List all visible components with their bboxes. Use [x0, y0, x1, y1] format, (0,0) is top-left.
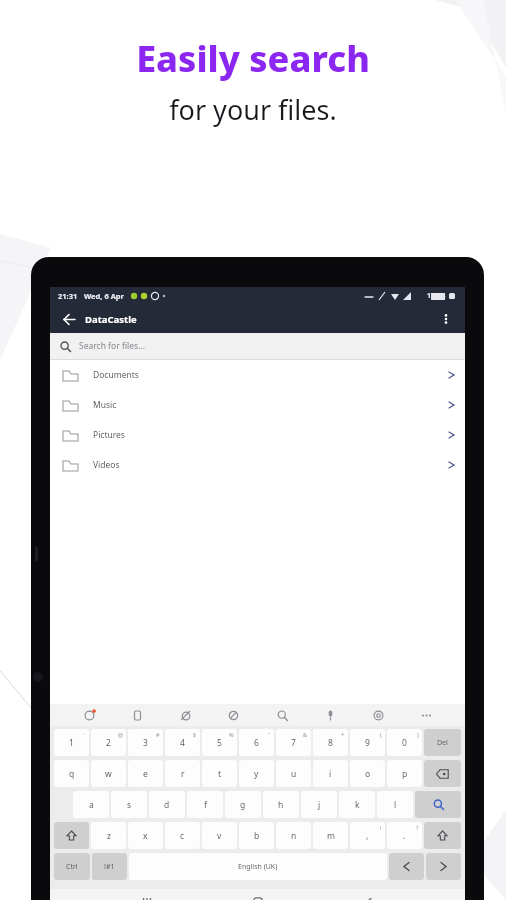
staticText: ,: [366, 830, 369, 842]
button[interactable]: p: [387, 760, 422, 787]
button[interactable]: Keyboard tool 1: [80, 706, 98, 724]
staticText: m: [327, 830, 335, 842]
staticText: !: [380, 824, 382, 831]
button[interactable]: .: [387, 822, 422, 849]
button[interactable]: 8: [313, 729, 348, 756]
button[interactable]: Music: [50, 390, 465, 420]
button[interactable]: a: [73, 791, 109, 818]
button[interactable]: Videos: [50, 450, 465, 480]
staticText: ): [417, 731, 419, 738]
button[interactable]: b: [239, 822, 274, 849]
button[interactable]: c: [165, 822, 200, 849]
button[interactable]: Backspace: [424, 760, 461, 787]
staticText: r: [181, 768, 185, 780]
button[interactable]: q: [54, 760, 89, 787]
button[interactable]: 9: [350, 729, 385, 756]
button[interactable]: 7: [276, 729, 311, 756]
button[interactable]: 1: [54, 729, 89, 756]
button[interactable]: Previous: [389, 853, 424, 880]
button[interactable]: Pictures: [50, 420, 465, 450]
button[interactable]: Keyboard tool 7: [369, 706, 387, 724]
button[interactable]: English (UK): [129, 853, 387, 880]
button[interactable]: l: [377, 791, 413, 818]
button[interactable]: n: [276, 822, 311, 849]
staticText: v: [217, 830, 222, 842]
staticText: Documents: [93, 369, 139, 381]
staticText: 6: [254, 737, 259, 749]
staticText: a: [89, 799, 94, 811]
staticText: ?: [416, 824, 419, 831]
button[interactable]: 0: [387, 729, 422, 756]
button[interactable]: Keyboard tool 8: [417, 706, 435, 724]
staticText: Del: [437, 738, 448, 748]
button[interactable]: Keyboard tool 5: [273, 706, 291, 724]
staticText: g: [240, 799, 246, 811]
staticText: !#1: [104, 862, 115, 872]
button[interactable]: x: [128, 822, 163, 849]
staticText: $: [193, 731, 197, 738]
button[interactable]: j: [301, 791, 337, 818]
button[interactable]: Search for files...: [60, 333, 465, 359]
button[interactable]: Search: [415, 791, 461, 818]
button[interactable]: d: [149, 791, 185, 818]
button[interactable]: 4: [165, 729, 200, 756]
button[interactable]: Keyboard tool 2: [128, 706, 146, 724]
button[interactable]: s: [111, 791, 147, 818]
staticText: h: [278, 799, 284, 811]
button[interactable]: h: [263, 791, 299, 818]
staticText: w: [105, 768, 112, 780]
staticText: e: [143, 768, 148, 780]
button[interactable]: e: [128, 760, 163, 787]
button[interactable]: y: [239, 760, 274, 787]
staticText: Videos: [93, 459, 120, 471]
button[interactable]: z: [91, 822, 126, 849]
button[interactable]: u: [276, 760, 311, 787]
button[interactable]: Keyboard tool 6: [321, 706, 339, 724]
button[interactable]: Ctrl: [54, 853, 90, 880]
button[interactable]: 3: [128, 729, 163, 756]
button[interactable]: Home: [245, 889, 271, 900]
button[interactable]: Shift: [54, 822, 89, 849]
staticText: x: [143, 830, 148, 842]
button[interactable]: i: [313, 760, 348, 787]
button[interactable]: Documents: [50, 360, 465, 390]
button[interactable]: Back: [59, 309, 79, 329]
button[interactable]: Keyboard tool 3: [176, 706, 194, 724]
button[interactable]: r: [165, 760, 200, 787]
button[interactable]: More options: [436, 309, 456, 329]
button[interactable]: o: [350, 760, 385, 787]
button[interactable]: Back: [355, 889, 381, 900]
button[interactable]: Shift: [424, 822, 461, 849]
staticText: 7: [291, 737, 296, 749]
staticText: s: [127, 799, 132, 811]
staticText: f: [204, 799, 207, 811]
staticText: Search for files...: [79, 340, 145, 352]
staticText: 5: [217, 737, 222, 749]
button[interactable]: g: [225, 791, 261, 818]
staticText: 4: [180, 737, 185, 749]
button[interactable]: Del: [424, 729, 461, 756]
button[interactable]: Recent apps: [134, 889, 160, 900]
button[interactable]: 5: [202, 729, 237, 756]
button[interactable]: Next: [426, 853, 461, 880]
staticText: %: [229, 731, 234, 738]
staticText: i: [329, 768, 332, 780]
button[interactable]: k: [339, 791, 375, 818]
staticText: &: [303, 731, 308, 738]
button[interactable]: ,: [350, 822, 385, 849]
button[interactable]: !#1: [92, 853, 127, 880]
staticText: Easily search: [136, 34, 370, 83]
button[interactable]: 2: [91, 729, 126, 756]
button[interactable]: w: [91, 760, 126, 787]
button[interactable]: v: [202, 822, 237, 849]
staticText: k: [355, 799, 360, 811]
button[interactable]: f: [187, 791, 223, 818]
button[interactable]: t: [202, 760, 237, 787]
staticText: 21:31: [58, 291, 78, 301]
staticText: u: [291, 768, 297, 780]
staticText: ˜: [268, 731, 271, 738]
staticText: 3: [143, 737, 148, 749]
button[interactable]: m: [313, 822, 348, 849]
button[interactable]: Keyboard tool 4: [224, 706, 242, 724]
button[interactable]: 6: [239, 729, 274, 756]
